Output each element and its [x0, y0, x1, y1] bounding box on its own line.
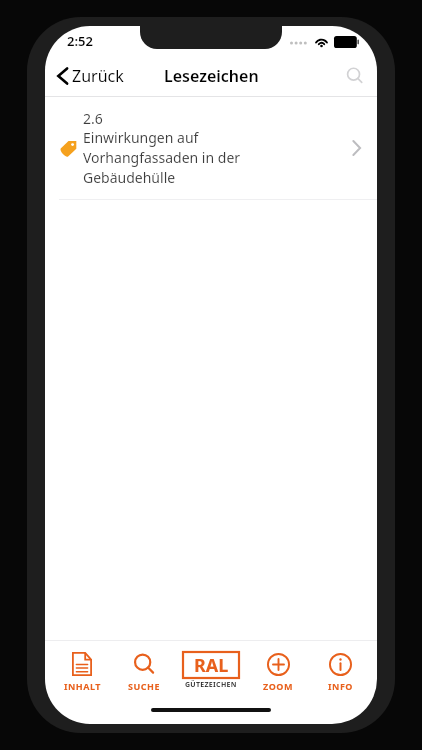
- staticText: RAL: [194, 653, 229, 678]
- button[interactable]: RAL: [175, 650, 247, 692]
- button[interactable]: ZOOM: [247, 647, 309, 696]
- button[interactable]: SUCHE: [113, 647, 175, 696]
- staticText: Zurück: [72, 65, 124, 87]
- button[interactable]: INFO: [309, 647, 371, 696]
- button[interactable]: INHALT: [51, 647, 113, 696]
- button[interactable]: Zurück: [45, 59, 134, 93]
- staticText: Einwirkungen auf Vorhangfassaden in der …: [83, 128, 241, 187]
- staticText: INHALT: [64, 680, 101, 692]
- staticText: 2.6: [83, 109, 103, 128]
- staticText: INFO: [328, 680, 353, 692]
- staticText: 2:52: [67, 32, 93, 50]
- staticText: ZOOM: [263, 680, 293, 692]
- staticText: GÜTEZEICHEN: [185, 680, 237, 690]
- button[interactable]: Suche: [333, 56, 377, 96]
- button[interactable]: 2.6: [45, 97, 377, 199]
- staticText: Lesezeichen: [164, 65, 259, 87]
- staticText: SUCHE: [128, 680, 160, 692]
